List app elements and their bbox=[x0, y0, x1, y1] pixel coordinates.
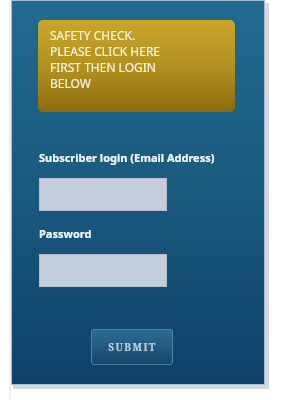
button[interactable]: SAFETY CHECK. PLEASE CLICK HERE FIRST TH… bbox=[38, 20, 235, 112]
button[interactable]: Submit bbox=[91, 329, 173, 365]
staticText: Password bbox=[39, 226, 92, 241]
button[interactable]: Text input bbox=[39, 178, 167, 211]
staticText: Subscriber login (Email Address) bbox=[39, 150, 215, 165]
button[interactable]: Text input bbox=[39, 254, 167, 287]
staticText: SAFETY CHECK. PLEASE CLICK HERE FIRST TH… bbox=[50, 27, 161, 91]
staticText: SUBMIT bbox=[108, 340, 157, 354]
